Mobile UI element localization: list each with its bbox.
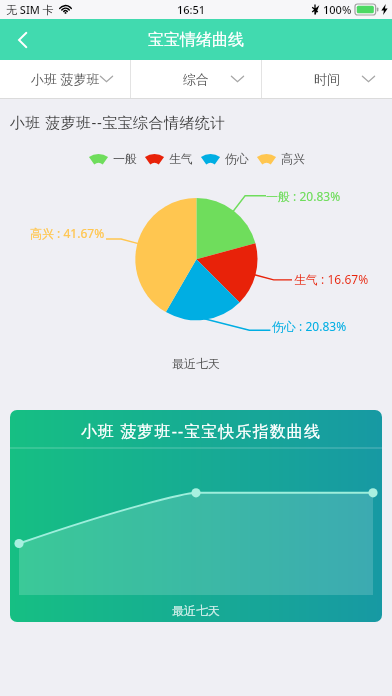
staticText: 高兴	[281, 151, 305, 166]
staticText: 最近七天	[172, 603, 220, 618]
button[interactable]: 小班 菠萝班	[0, 60, 130, 98]
staticText: 综合	[183, 71, 209, 87]
staticText: 伤心 : 20.83%	[272, 318, 347, 334]
staticText: 无 SIM 卡	[6, 2, 54, 17]
staticText: 100%	[323, 2, 352, 17]
staticText: 高兴 : 41.67%	[30, 225, 105, 241]
staticText: 小班 菠萝班	[31, 70, 100, 88]
button[interactable]: 小班 菠萝班--宝宝快乐指数曲线	[10, 410, 382, 622]
button[interactable]: Back	[0, 19, 44, 60]
staticText: 宝宝情绪曲线	[148, 30, 244, 50]
staticText: 一般	[113, 151, 137, 166]
button[interactable]: 时间	[262, 60, 392, 98]
staticText: 小班 菠萝班--宝宝快乐指数曲线	[81, 420, 322, 442]
staticText: 一般 : 20.83%	[266, 188, 341, 204]
staticText: 最近七天	[0, 356, 392, 371]
staticText: 小班 菠萝班--宝宝综合情绪统计	[10, 112, 226, 132]
staticText: 时间	[314, 71, 340, 87]
button[interactable]: 综合	[131, 60, 261, 98]
staticText: 16:51	[177, 2, 206, 17]
staticText: 生气 : 16.67%	[294, 271, 369, 287]
staticText: 生气	[169, 151, 193, 166]
staticText: 伤心	[225, 151, 249, 166]
